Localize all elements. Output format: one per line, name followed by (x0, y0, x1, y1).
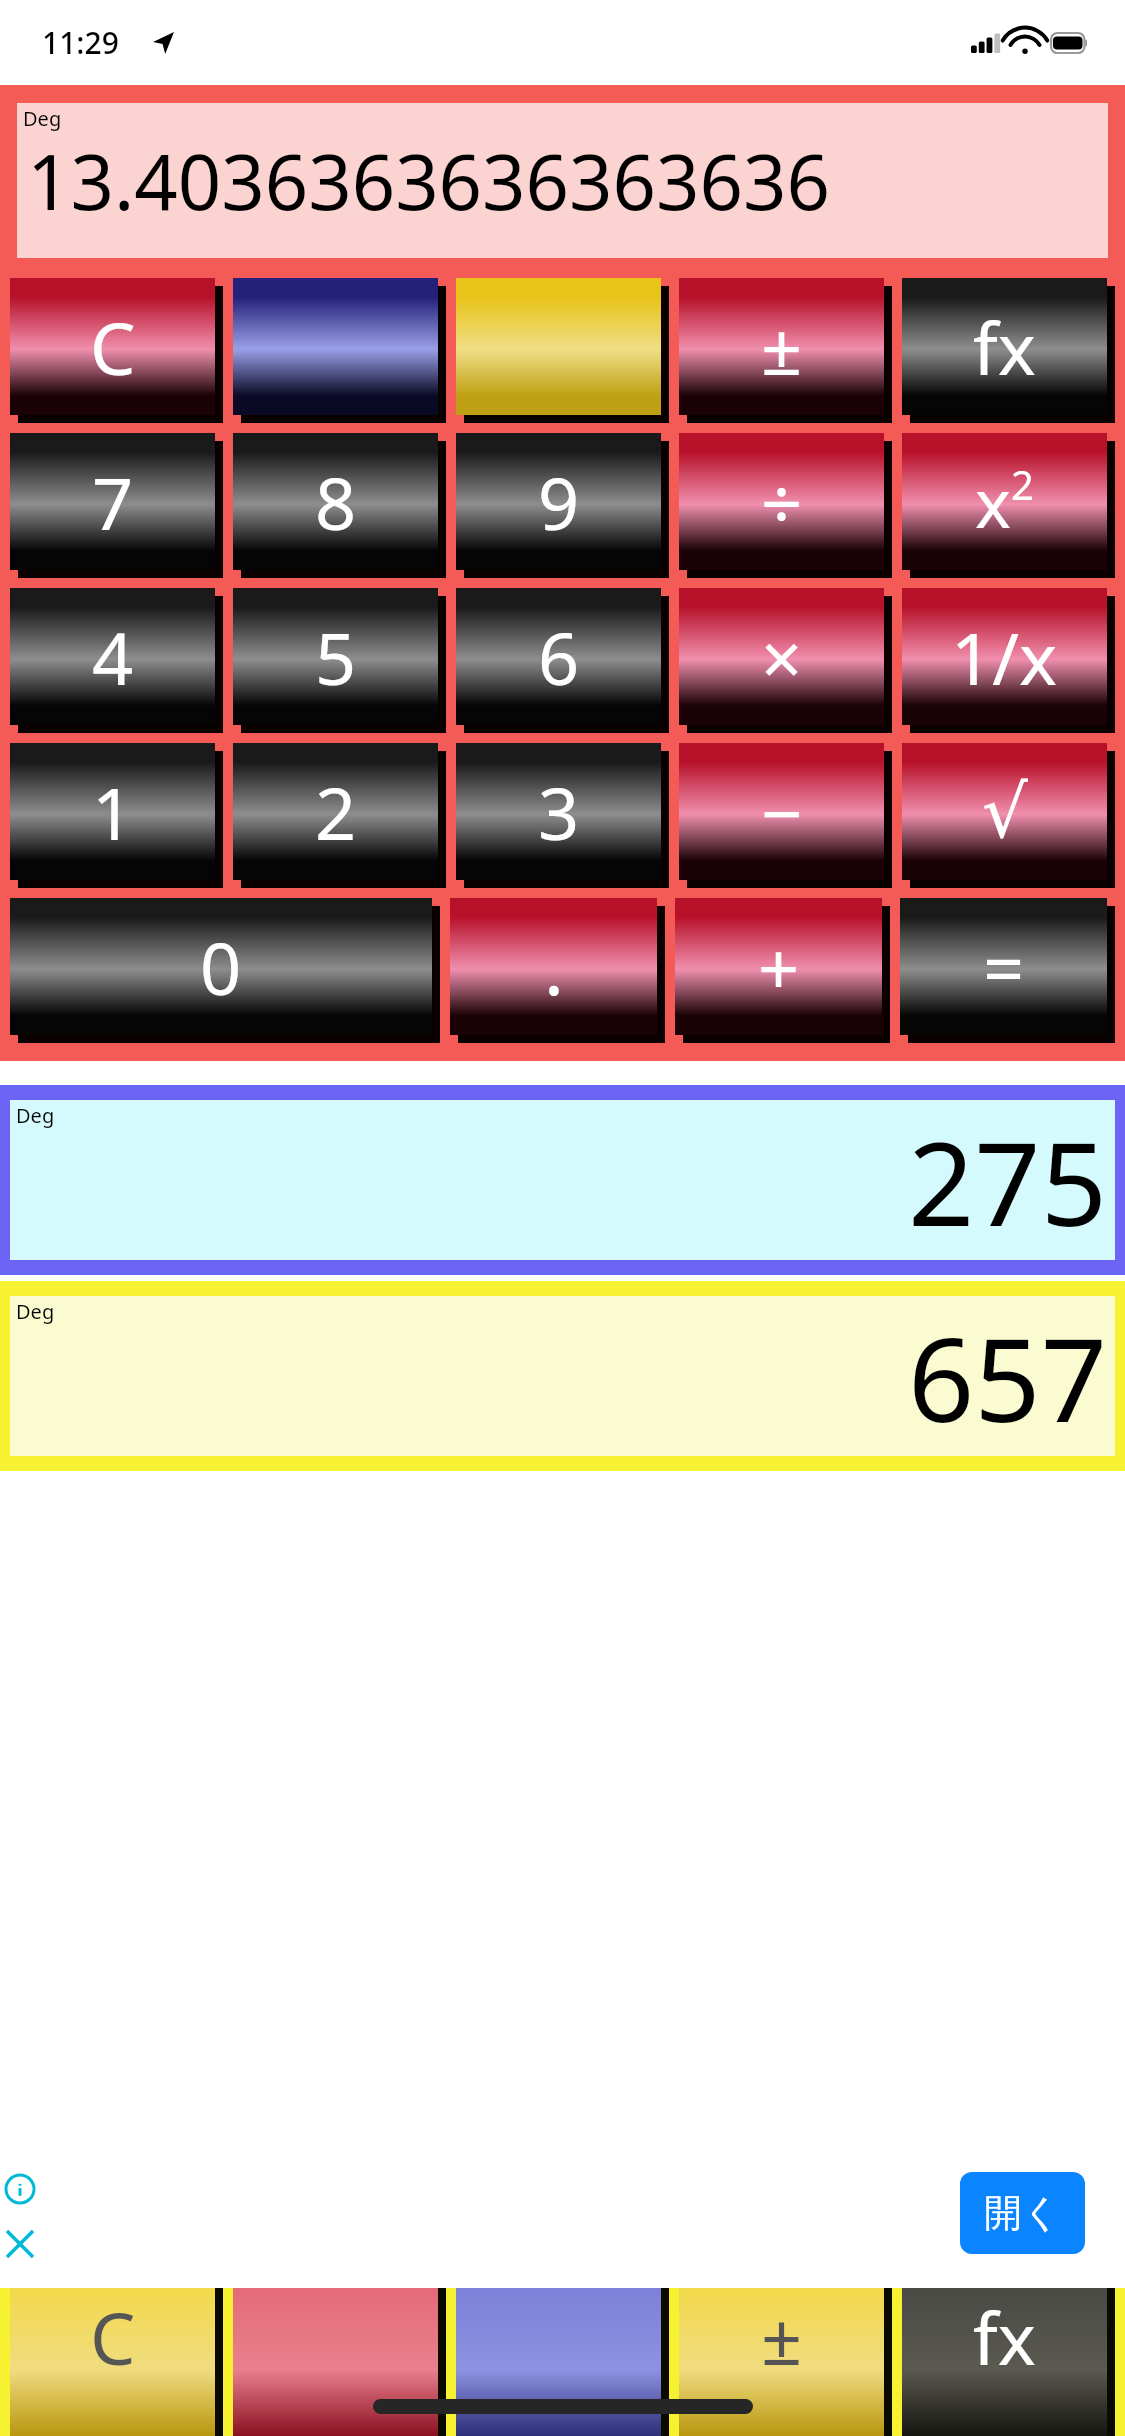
staticText: 13.4036363636363636 (27, 129, 830, 233)
staticText: = (983, 918, 1025, 1016)
staticText: 7 (92, 453, 134, 551)
staticText: 11:29 (42, 22, 119, 63)
staticText: ± (761, 298, 803, 396)
staticText: ± (761, 2288, 803, 2386)
button[interactable]: 6 (456, 588, 669, 733)
button[interactable]: − (679, 743, 892, 888)
button[interactable]: Memory key (456, 2288, 669, 2436)
staticText: C (90, 2288, 136, 2386)
staticText: ÷ (761, 453, 803, 551)
button[interactable]: 9 (456, 433, 669, 578)
staticText: . (544, 916, 564, 1017)
button[interactable]: 2 (233, 743, 446, 888)
button[interactable]: . (450, 898, 665, 1043)
button[interactable]: 1 (10, 743, 223, 888)
staticText: 2 (315, 763, 357, 861)
button[interactable]: Ad info (6, 2175, 34, 2203)
button[interactable]: fx (902, 2288, 1115, 2436)
button[interactable]: C (10, 278, 223, 423)
button[interactable]: √ (902, 743, 1115, 888)
staticText: 6 (538, 608, 580, 706)
staticText: 8 (315, 453, 357, 551)
staticText: − (761, 763, 803, 861)
button[interactable]: x (902, 433, 1115, 578)
staticText: fx (973, 298, 1036, 396)
button[interactable]: 1/x (902, 588, 1115, 733)
button[interactable]: Memory key (233, 2288, 446, 2436)
staticText: Deg (16, 1102, 55, 1129)
button[interactable]: × (679, 588, 892, 733)
staticText: Deg (23, 105, 62, 132)
button[interactable]: fx (902, 278, 1115, 423)
button[interactable]: 8 (233, 433, 446, 578)
staticText: 0 (200, 918, 242, 1016)
staticText: C (90, 298, 136, 396)
staticText: 9 (538, 453, 580, 551)
button[interactable]: 4 (10, 588, 223, 733)
button[interactable]: Blue memory (233, 278, 446, 423)
button[interactable]: C (10, 2288, 223, 2436)
staticText: 開く (984, 2189, 1061, 2237)
staticText: 4 (92, 608, 134, 706)
button[interactable]: = (900, 898, 1115, 1043)
staticText: × (761, 608, 803, 706)
button[interactable]: 7 (10, 433, 223, 578)
staticText: 657 (907, 1298, 1107, 1456)
button[interactable]: 開く (960, 2172, 1085, 2254)
staticText: 1 (92, 763, 134, 861)
staticText: 1/x (951, 608, 1058, 706)
staticText: 5 (315, 608, 357, 706)
button[interactable]: Close ad (7, 2231, 33, 2257)
staticText: 3 (538, 763, 580, 861)
button[interactable]: 0 (10, 898, 440, 1043)
button[interactable]: Yellow memory (456, 278, 669, 423)
staticText: √ (982, 770, 1028, 854)
staticText: 2 (1011, 457, 1034, 511)
button[interactable]: 3 (456, 743, 669, 888)
button[interactable]: ± (679, 278, 892, 423)
staticText: 275 (907, 1102, 1107, 1260)
button[interactable]: ± (679, 2288, 892, 2436)
staticText: fx (973, 2288, 1036, 2386)
staticText: x (975, 455, 1011, 548)
button[interactable]: 5 (233, 588, 446, 733)
button[interactable]: + (675, 898, 890, 1043)
staticText: Deg (16, 1298, 55, 1325)
staticText: + (758, 918, 800, 1016)
button[interactable]: ÷ (679, 433, 892, 578)
